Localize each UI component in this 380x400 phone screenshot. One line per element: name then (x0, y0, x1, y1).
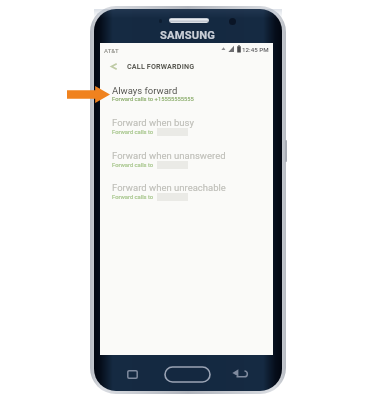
staticText: 12:45 PM (242, 46, 269, 53)
staticText: Forward calls to (112, 194, 155, 201)
staticText: Forward when unanswered (112, 150, 226, 161)
staticText: Forward calls to (112, 129, 155, 136)
button[interactable]: Always forward (100, 85, 273, 117)
button[interactable]: Back (232, 368, 248, 379)
staticText: Always forward (112, 85, 178, 96)
button[interactable]: Forward when unreachable (100, 182, 273, 214)
staticText: SAMSUNG (160, 29, 216, 42)
button[interactable]: Home (164, 366, 211, 383)
staticText: Forward calls to (112, 162, 155, 169)
button[interactable]: Forward when unanswered (100, 150, 273, 182)
staticText: Forward when busy (112, 117, 195, 128)
staticText: Forward calls to +15555555555 (112, 96, 194, 103)
button[interactable]: Navigate up (100, 56, 126, 76)
button[interactable]: Forward when busy (100, 117, 273, 149)
staticText: AT&T (104, 47, 119, 54)
staticText: CALL FORWARDING (127, 62, 195, 70)
button[interactable]: Recent apps (127, 370, 138, 379)
staticText: Forward when unreachable (112, 182, 226, 193)
